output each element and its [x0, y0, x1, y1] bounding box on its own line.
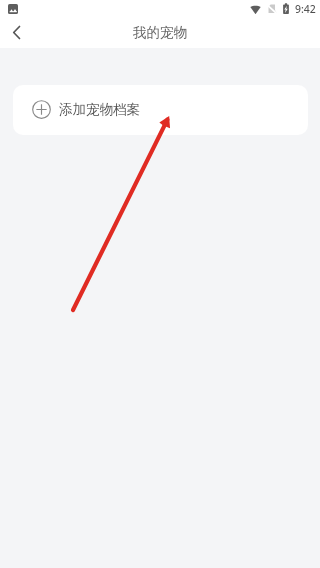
- staticText: 添加宠物档案: [59, 101, 140, 118]
- staticText: 我的宠物: [133, 24, 187, 41]
- staticText: 9:42: [295, 2, 316, 16]
- button[interactable]: Back: [0, 18, 32, 46]
- button[interactable]: 添加宠物档案: [13, 85, 308, 135]
